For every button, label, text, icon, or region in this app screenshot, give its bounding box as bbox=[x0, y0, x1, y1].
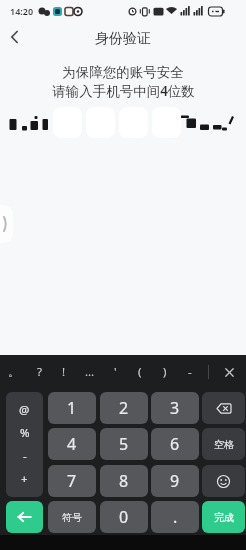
staticText: 为保障您的账号安全 bbox=[62, 64, 184, 81]
button[interactable]: - bbox=[178, 361, 202, 383]
button[interactable]: ? bbox=[27, 361, 51, 383]
staticText: 请输入手机号中间4位数 bbox=[52, 82, 195, 100]
button[interactable]: 1 bbox=[48, 392, 96, 424]
staticText: 1 bbox=[67, 397, 77, 419]
staticText: ! bbox=[62, 364, 66, 380]
staticText: 完成 bbox=[214, 511, 234, 524]
staticText: 5 bbox=[119, 433, 129, 455]
staticText: - bbox=[188, 364, 192, 380]
button[interactable]: 0 bbox=[100, 501, 148, 533]
staticText: 4 bbox=[67, 433, 77, 455]
button[interactable]: ( bbox=[128, 361, 152, 383]
staticText: ' bbox=[114, 364, 117, 380]
staticText: 符号 bbox=[62, 511, 82, 524]
button[interactable]: 6 bbox=[151, 428, 199, 460]
staticText: + bbox=[21, 471, 28, 487]
staticText: 0 bbox=[119, 506, 129, 528]
staticText: . bbox=[173, 506, 178, 528]
staticText: 3 bbox=[170, 397, 180, 419]
staticText: … bbox=[85, 364, 95, 380]
button[interactable]: 2 bbox=[100, 392, 148, 424]
button[interactable]: 完成 bbox=[202, 501, 245, 533]
staticText: 。 bbox=[8, 365, 20, 379]
button[interactable]: 。 bbox=[2, 361, 26, 383]
button[interactable]: 5 bbox=[100, 428, 148, 460]
button[interactable]: . bbox=[151, 501, 199, 533]
staticText: 6 bbox=[170, 433, 180, 455]
button[interactable]: 空格 bbox=[202, 428, 245, 460]
button[interactable] bbox=[6, 501, 43, 533]
button[interactable]: ' bbox=[103, 361, 127, 383]
button[interactable]: 7 bbox=[48, 465, 96, 497]
button[interactable]: 符号 bbox=[48, 501, 96, 533]
button[interactable]: 8 bbox=[100, 465, 148, 497]
button[interactable]: 3 bbox=[151, 392, 199, 424]
button[interactable]: 4 bbox=[48, 428, 96, 460]
button[interactable]: … bbox=[78, 361, 102, 383]
staticText: 14:20 bbox=[10, 5, 34, 17]
button[interactable] bbox=[202, 392, 245, 424]
staticText: @ bbox=[19, 402, 30, 418]
staticText: 身份验证 bbox=[95, 30, 151, 48]
staticText: ) bbox=[163, 364, 167, 380]
button[interactable] bbox=[0, 22, 34, 56]
button[interactable]: 9 bbox=[151, 465, 199, 497]
staticText: - bbox=[23, 448, 27, 464]
staticText: ( bbox=[138, 364, 142, 380]
staticText: 2 bbox=[119, 397, 129, 419]
staticText: ? bbox=[37, 364, 42, 380]
staticText: 空格 bbox=[214, 438, 234, 451]
staticText: 8 bbox=[119, 470, 129, 492]
button[interactable]: @ bbox=[6, 392, 43, 497]
button[interactable]: ) bbox=[153, 361, 177, 383]
staticText: % bbox=[20, 425, 30, 441]
button[interactable] bbox=[216, 361, 242, 383]
staticText: 9 bbox=[170, 470, 180, 492]
staticText: 7 bbox=[67, 470, 77, 492]
button[interactable]: ! bbox=[52, 361, 76, 383]
button[interactable] bbox=[202, 465, 245, 497]
